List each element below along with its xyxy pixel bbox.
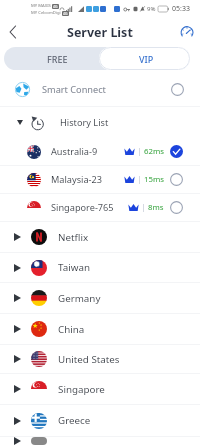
staticText: Netflix xyxy=(58,231,89,244)
button[interactable]: FREE xyxy=(12,47,102,70)
button[interactable]: Netflix xyxy=(0,222,200,252)
staticText: Australia-9 xyxy=(51,145,98,158)
button[interactable]: Germany xyxy=(0,283,200,313)
staticText: Greece xyxy=(58,414,91,427)
button[interactable]: History List xyxy=(0,107,200,138)
button[interactable]: Singapore-765 xyxy=(0,194,200,221)
button[interactable]: Malaysia-23 xyxy=(0,166,200,193)
button[interactable]: China xyxy=(0,314,200,344)
staticText: 62ms xyxy=(144,146,164,157)
staticText: History List xyxy=(60,116,109,129)
staticText: VIP xyxy=(139,53,154,65)
button[interactable]: United States xyxy=(0,345,200,373)
staticText: China xyxy=(58,323,85,336)
button[interactable]: Smart Connect xyxy=(0,72,200,106)
staticText: Singapore xyxy=(58,383,105,396)
button[interactable]: Singapore xyxy=(0,374,200,404)
button[interactable]: Back xyxy=(0,18,26,46)
staticText: Malaysia-23 xyxy=(51,173,103,186)
staticText: 9% xyxy=(147,5,156,13)
staticText: 8ms xyxy=(148,202,164,213)
button[interactable]: Speed test xyxy=(174,18,200,46)
staticText: Smart Connect xyxy=(42,83,106,96)
staticText: FREE xyxy=(47,53,68,65)
staticText: 15ms xyxy=(144,174,164,185)
staticText: MY MAXIS xyxy=(31,3,51,9)
button[interactable]: Australia-9 xyxy=(0,138,200,165)
button[interactable]: Taiwan xyxy=(0,253,200,282)
staticText: Taiwan xyxy=(58,261,90,274)
button[interactable]: Greece xyxy=(0,405,200,436)
button[interactable]: VIP xyxy=(99,47,190,70)
staticText: 4G xyxy=(53,4,58,9)
staticText: Singapore-765 xyxy=(51,201,114,214)
staticText: 4G xyxy=(63,11,68,16)
button[interactable] xyxy=(0,437,200,445)
staticText: 05:33 xyxy=(172,4,190,14)
staticText: MY CelcomDigi xyxy=(31,10,61,16)
staticText: Germany xyxy=(58,292,101,305)
staticText: Server List xyxy=(67,24,133,41)
staticText: United States xyxy=(58,353,120,366)
